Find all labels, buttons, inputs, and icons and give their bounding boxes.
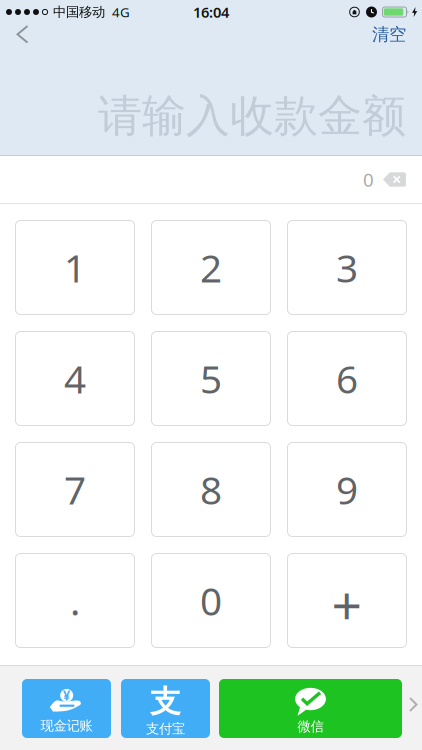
staticText: 1 [64,242,86,293]
staticText: . [70,575,80,626]
staticText: 2 [200,242,222,293]
staticText: 4 [64,353,86,404]
button[interactable]: Delete [383,172,406,187]
staticText: 9 [336,464,358,515]
staticText: 16:04 [193,2,229,22]
button[interactable]: Back [0,21,41,48]
button[interactable]: 8 [151,442,271,537]
button[interactable]: 清空 [356,21,422,48]
button[interactable]: 4 [15,331,135,426]
button[interactable]: ¥ [22,679,111,738]
button[interactable]: 5 [151,331,271,426]
staticText: 现金记账 [40,718,92,734]
staticText: + [331,569,362,640]
staticText: 0 [363,167,374,192]
button[interactable]: 1 [15,220,135,315]
button[interactable]: + [287,553,407,648]
button[interactable]: 7 [15,442,135,537]
button[interactable]: More payment methods [409,691,418,726]
button[interactable]: 2 [151,220,271,315]
staticText: 请输入收款金额 [98,89,406,143]
button[interactable]: . [15,553,135,648]
button[interactable]: 6 [287,331,407,426]
staticText: 支付宝 [146,721,185,737]
staticText: 7 [64,464,86,515]
button[interactable]: 支 [121,679,210,738]
button[interactable]: 0 [151,553,271,648]
staticText: 清空 [372,24,406,45]
staticText: 0 [200,575,222,626]
button[interactable]: 9 [287,442,407,537]
staticText: 微信 [297,718,323,735]
staticText: 4G [112,3,130,21]
button[interactable]: 微信 [219,679,402,738]
staticText: 8 [200,464,222,515]
staticText: 中国移动 [53,4,105,20]
button[interactable]: 3 [287,220,407,315]
staticText: 5 [200,353,222,404]
staticText: ¥ [63,686,71,704]
staticText: 3 [336,242,358,293]
staticText: 支 [150,683,181,721]
staticText: 6 [336,353,358,404]
